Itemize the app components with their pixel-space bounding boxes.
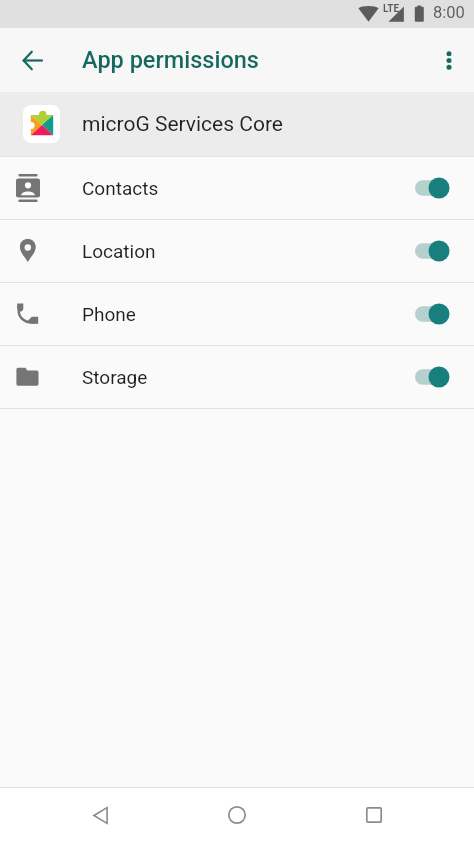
button[interactable]: More options bbox=[425, 36, 473, 84]
staticText: 8:00 bbox=[433, 3, 465, 22]
staticText: App permissions bbox=[82, 46, 259, 74]
button[interactable]: Navigate up bbox=[8, 36, 57, 85]
button[interactable]: Back bbox=[76, 791, 124, 839]
staticText: LTE bbox=[383, 3, 400, 15]
button[interactable]: Contacts bbox=[0, 157, 474, 219]
button[interactable]: Storage bbox=[0, 346, 474, 408]
button[interactable]: microG Services Core bbox=[0, 92, 474, 156]
button[interactable]: Phone bbox=[0, 283, 474, 345]
staticText: Location bbox=[82, 240, 156, 262]
button[interactable]: Permission toggle bbox=[412, 294, 460, 334]
button[interactable]: Home bbox=[213, 791, 261, 839]
staticText: microG Services Core bbox=[82, 112, 283, 137]
staticText: Phone bbox=[82, 303, 136, 325]
button[interactable]: Location bbox=[0, 220, 474, 282]
staticText: Storage bbox=[82, 366, 148, 388]
button[interactable]: Recent apps bbox=[350, 791, 398, 839]
button[interactable]: Permission toggle bbox=[412, 231, 460, 271]
button[interactable]: Permission toggle bbox=[412, 168, 460, 208]
button[interactable]: Permission toggle bbox=[412, 357, 460, 397]
staticText: Contacts bbox=[82, 177, 159, 199]
